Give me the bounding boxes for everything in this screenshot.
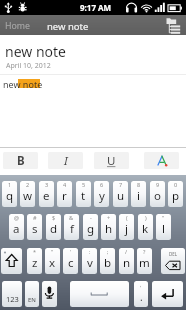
- staticText: 4: [63, 181, 67, 188]
- button[interactable]: y: [94, 181, 109, 207]
- button[interactable]: b: [100, 248, 115, 274]
- button[interactable]: r: [57, 181, 72, 207]
- staticText: ": [162, 214, 165, 221]
- staticText: U: [107, 153, 116, 169]
- button[interactable]: Text colour: [144, 152, 179, 169]
- staticText: t: [81, 188, 86, 204]
- button[interactable]: d: [46, 214, 61, 240]
- button[interactable]: n: [119, 248, 134, 274]
- button[interactable]: k: [138, 214, 153, 240]
- staticText: +: [107, 214, 111, 221]
- staticText: 1: [8, 181, 12, 188]
- button[interactable]: p: [168, 181, 183, 207]
- button[interactable]: f: [64, 214, 79, 240]
- staticText: ?: [143, 248, 146, 255]
- button[interactable]: i: [131, 181, 146, 207]
- button[interactable]: Folders: [163, 15, 186, 35]
- button[interactable]: c: [63, 248, 78, 274]
- staticText: i: [137, 188, 140, 204]
- staticText: ): [145, 214, 147, 221]
- staticText: y: [99, 188, 105, 204]
- button[interactable]: Home: [5, 20, 31, 32]
- staticText: n: [123, 255, 131, 271]
- staticText: p: [172, 188, 180, 204]
- staticText: 2: [26, 181, 30, 188]
- staticText: .: [140, 290, 143, 304]
- staticText: I: [64, 153, 68, 169]
- staticText: /: [125, 248, 128, 255]
- staticText: (: [126, 214, 128, 221]
- staticText: new note: [3, 78, 43, 90]
- staticText: :: [89, 248, 91, 255]
- staticText: B: [17, 153, 25, 169]
- staticText: ": [51, 248, 54, 255]
- staticText: DEL: [169, 251, 178, 257]
- staticText: 123: [6, 294, 19, 304]
- staticText: o: [154, 188, 161, 204]
- staticText: 8: [137, 181, 141, 188]
- staticText: v: [87, 255, 93, 271]
- button[interactable]: Bold: [3, 152, 38, 169]
- staticText: s: [32, 221, 38, 237]
- staticText: j: [125, 221, 128, 237]
- staticText: 3: [45, 181, 49, 188]
- staticText: 5: [82, 181, 86, 188]
- button[interactable]: l: [156, 214, 171, 240]
- staticText: $: [52, 214, 56, 221]
- button[interactable]: new note: [47, 20, 89, 33]
- button[interactable]: Italic: [48, 152, 83, 169]
- button[interactable]: Space: [70, 281, 129, 307]
- button[interactable]: j: [119, 214, 134, 240]
- button[interactable]: Language: [25, 281, 39, 307]
- staticText: z: [32, 255, 38, 271]
- button[interactable]: m: [137, 248, 152, 274]
- button[interactable]: v: [82, 248, 97, 274]
- staticText: ,: [140, 281, 142, 288]
- staticText: l: [162, 221, 165, 237]
- staticText: new note: [5, 42, 66, 61]
- staticText: f: [70, 221, 74, 237]
- staticText: g: [87, 221, 95, 237]
- button[interactable]: t: [76, 181, 91, 207]
- staticText: r: [62, 188, 67, 204]
- staticText: k: [142, 221, 149, 237]
- button[interactable]: x: [45, 248, 60, 274]
- button[interactable]: g: [83, 214, 98, 240]
- button[interactable]: o: [150, 181, 165, 207]
- button[interactable]: Shift: [1, 248, 22, 274]
- staticText: ;: [107, 248, 109, 255]
- button[interactable]: q: [2, 181, 17, 207]
- button[interactable]: Underline: [94, 152, 129, 169]
- staticText: c: [68, 255, 74, 271]
- button[interactable]: Numbers: [2, 281, 22, 307]
- staticText: 9: [156, 181, 160, 188]
- staticText: EN: [28, 296, 36, 304]
- staticText: b: [104, 255, 112, 271]
- staticText: 9:17 AM: [80, 2, 112, 13]
- staticText: &: [69, 214, 74, 221]
- staticText: 7: [119, 181, 123, 188]
- staticText: e: [43, 188, 50, 204]
- staticText: a: [13, 221, 20, 237]
- staticText: u: [117, 188, 125, 204]
- staticText: q: [6, 188, 14, 204]
- button[interactable]: u: [113, 181, 128, 207]
- staticText: h: [105, 221, 113, 237]
- button[interactable]: w: [20, 181, 35, 207]
- button[interactable]: a: [9, 214, 24, 240]
- button[interactable]: z: [27, 248, 42, 274]
- staticText: d: [50, 221, 58, 237]
- button[interactable]: h: [101, 214, 116, 240]
- button[interactable]: Voice input: [42, 281, 57, 307]
- staticText: ': [70, 248, 72, 255]
- staticText: 0: [174, 181, 178, 188]
- button[interactable]: Delete: [161, 248, 185, 274]
- staticText: *: [33, 248, 37, 255]
- staticText: April 10, 2012: [6, 61, 51, 71]
- button[interactable]: Period: [134, 281, 148, 307]
- button[interactable]: s: [27, 214, 42, 240]
- staticText: x: [49, 255, 56, 271]
- staticText: m: [139, 255, 150, 271]
- button[interactable]: e: [39, 181, 54, 207]
- button[interactable]: Enter: [152, 281, 183, 307]
